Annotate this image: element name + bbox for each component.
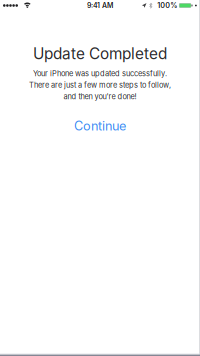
staticText: 9:41 AM [87, 1, 113, 10]
button[interactable]: Continue [0, 115, 200, 136]
staticText: 100% [157, 1, 177, 10]
staticText: Your iPhone was updated successfully. [33, 69, 167, 78]
staticText: Continue [74, 118, 126, 133]
staticText: and then you're done! [63, 92, 136, 101]
staticText: Update Completed [33, 44, 167, 63]
staticText: There are just a few more steps to follo… [29, 81, 171, 90]
